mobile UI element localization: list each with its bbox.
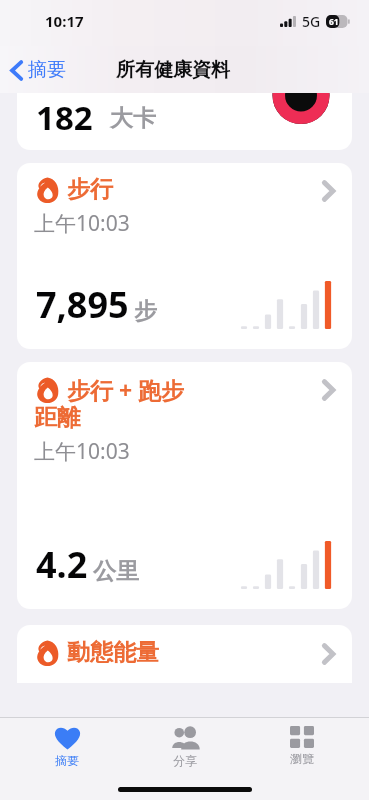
staticText: 上午10:03 (34, 437, 130, 466)
staticText: 182 (36, 95, 93, 140)
staticText: 7,895 (36, 280, 129, 329)
other: 摘要 (54, 726, 81, 750)
staticText: 上午10:03 (34, 209, 130, 238)
staticText: 大卡 (110, 104, 156, 133)
staticText: 4.2 (36, 540, 88, 589)
staticText: 61 (329, 16, 339, 28)
staticText: 摘要 (28, 58, 66, 82)
staticText: 摘要 (55, 753, 79, 768)
other: 瀏覽 (290, 726, 314, 748)
button[interactable]: 動態能量 (17, 625, 352, 683)
staticText: 瀏覽 (290, 751, 314, 766)
staticText: 步行 (67, 175, 113, 204)
button[interactable]: 182 (17, 93, 352, 150)
staticText: 10:17 (45, 11, 84, 31)
staticText: 公里 (93, 557, 139, 586)
staticText: 分享 (173, 753, 197, 768)
button[interactable]: 摘要 (0, 54, 74, 86)
button[interactable]: 分享 (135, 718, 235, 774)
button[interactable]: 瀏覽 (252, 718, 352, 772)
button[interactable]: 摘要 (17, 718, 117, 774)
staticText: 距離 (34, 403, 80, 432)
button[interactable]: 步行 + 跑步 (17, 362, 352, 609)
other: 分享 (169, 726, 201, 750)
staticText: 動態能量 (67, 638, 159, 667)
staticText: 步行 + 跑步 (67, 374, 185, 405)
staticText: 步 (134, 297, 157, 326)
staticText: 5G (302, 12, 321, 31)
staticText: 所有健康資料 (116, 58, 230, 82)
button[interactable]: 步行 (17, 163, 352, 349)
